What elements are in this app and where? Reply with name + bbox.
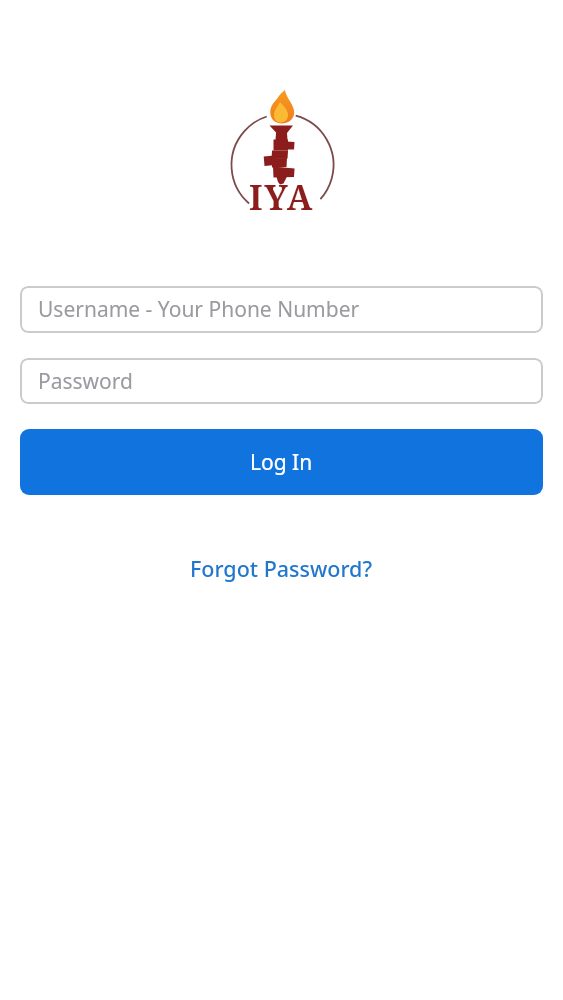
- button[interactable]: Forgot Password?: [0, 548, 563, 588]
- staticText: IYA: [249, 174, 314, 220]
- button[interactable]: Password: [20, 358, 543, 404]
- staticText: Log In: [250, 448, 313, 477]
- staticText: Username - Your Phone Number: [38, 295, 360, 324]
- button[interactable]: Username - Your Phone Number: [20, 286, 543, 333]
- staticText: Password: [38, 367, 133, 396]
- button[interactable]: Log In: [20, 429, 543, 495]
- staticText: Forgot Password?: [190, 554, 373, 583]
